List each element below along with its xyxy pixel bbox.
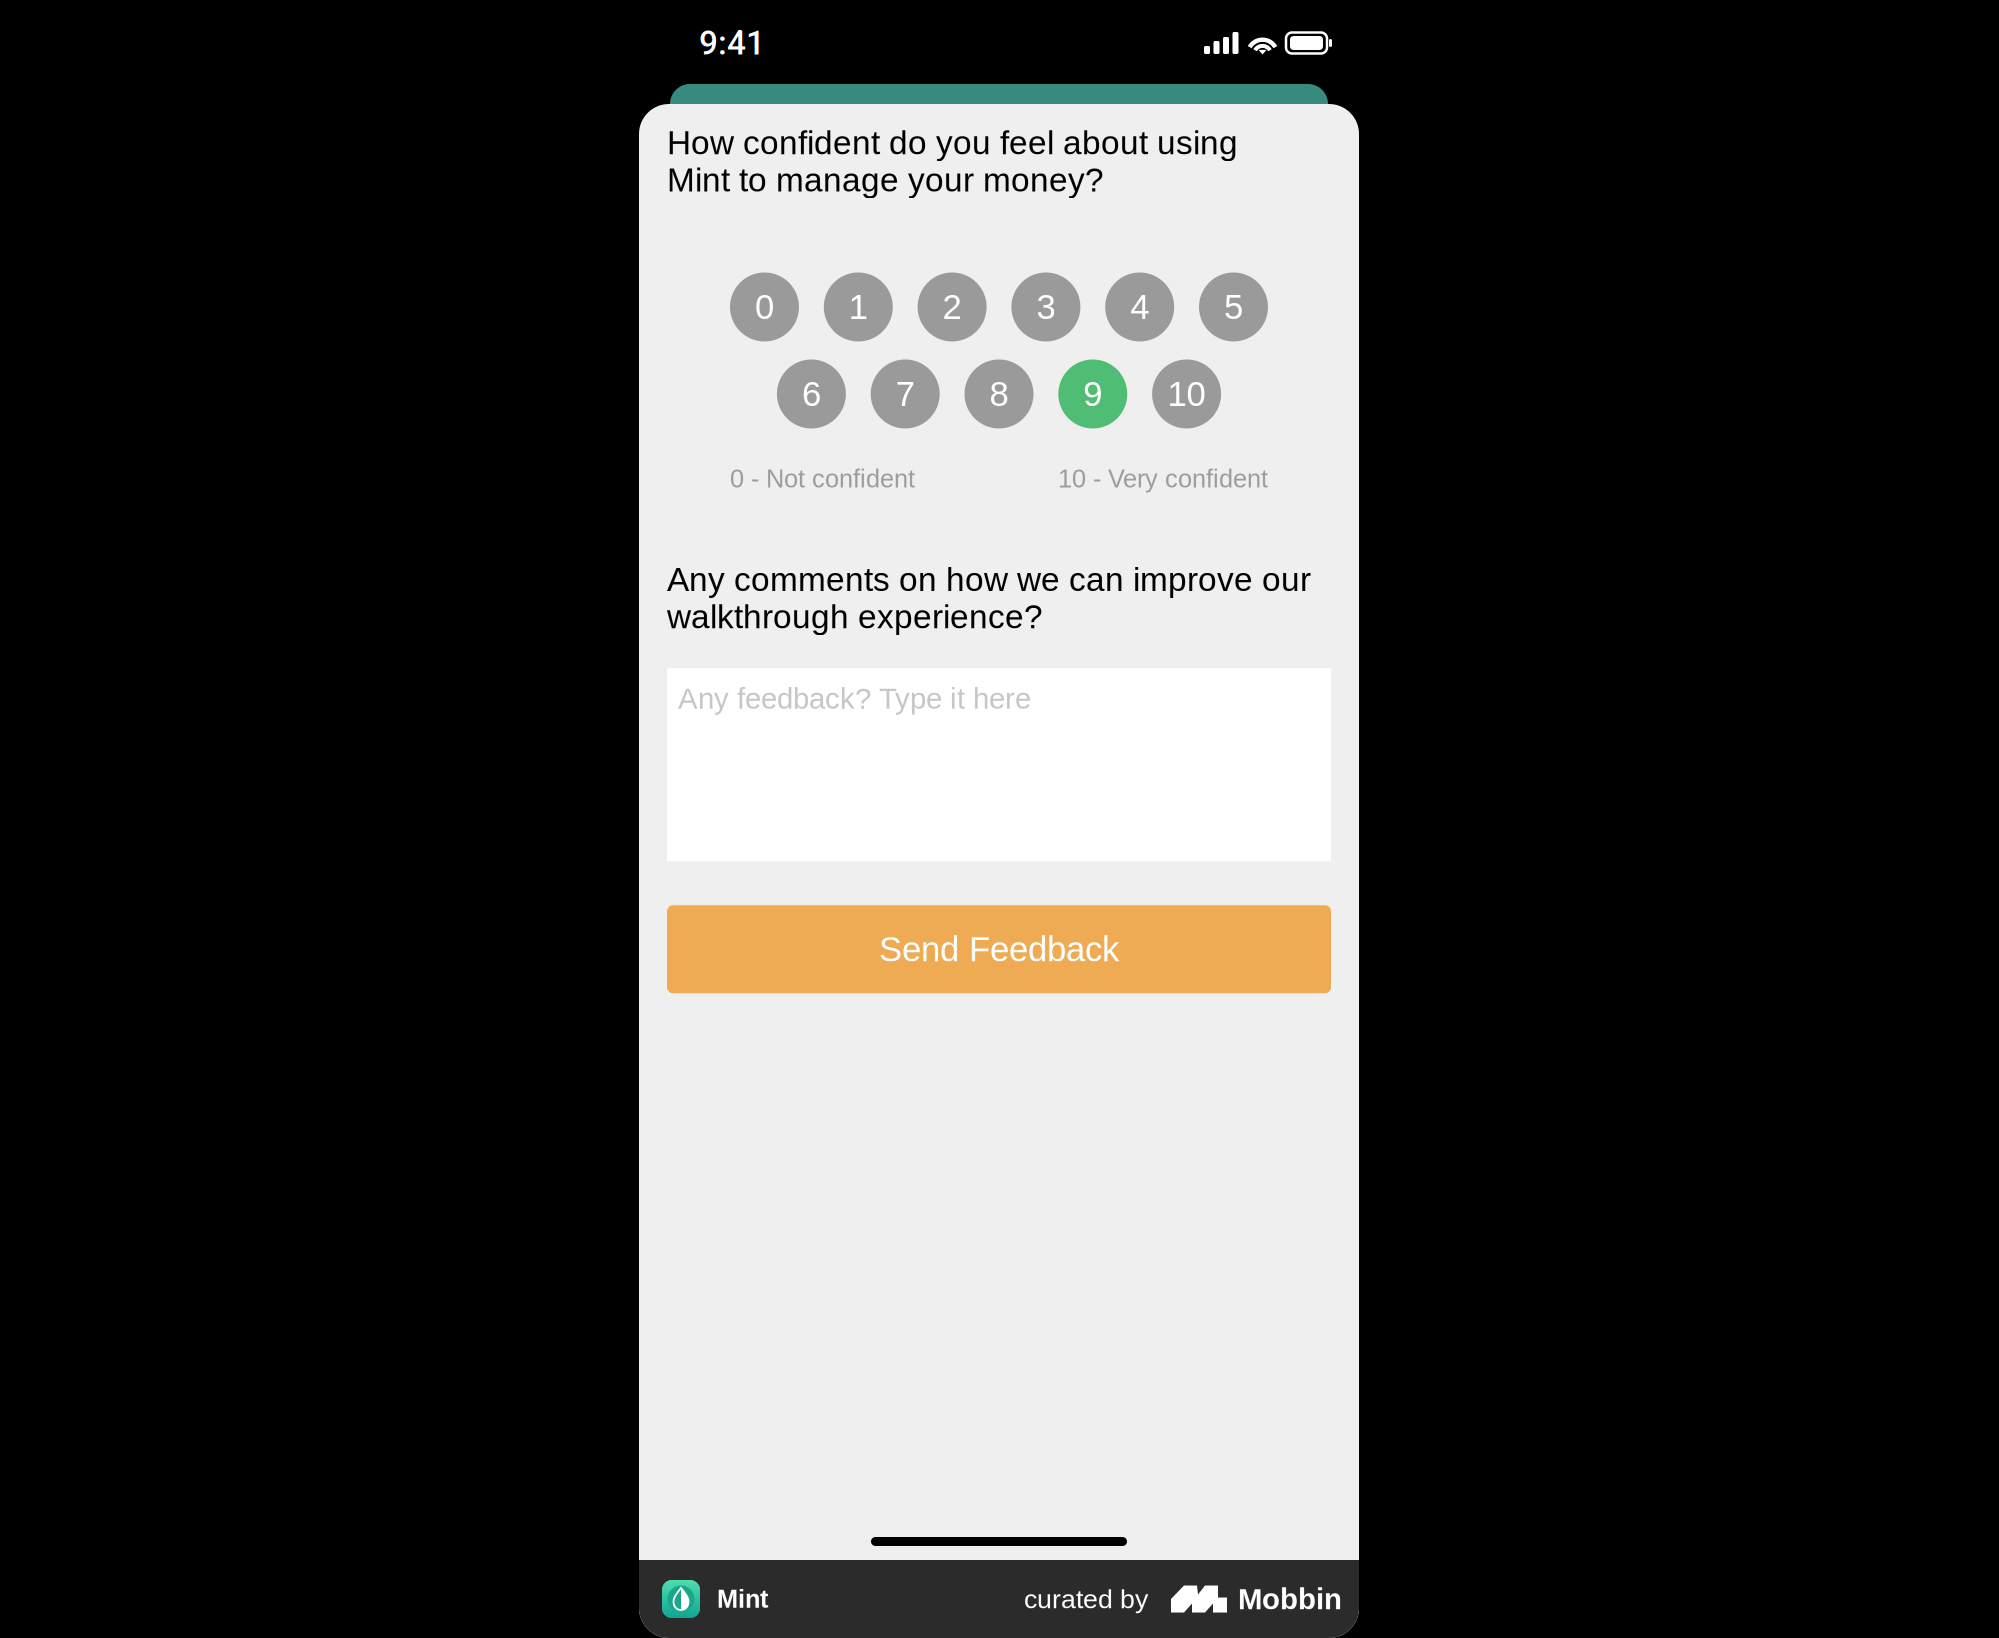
staticText: 0 - Not confident bbox=[730, 464, 915, 493]
button[interactable]: Send Feedback bbox=[667, 905, 1331, 993]
button[interactable]: curated by bbox=[1024, 1583, 1342, 1615]
staticText: curated by bbox=[1024, 1584, 1148, 1614]
staticText: Mobbin bbox=[1238, 1583, 1342, 1615]
button[interactable]: Rating 4 bbox=[1105, 272, 1174, 341]
staticText: Any feedback? Type it here bbox=[678, 682, 1031, 715]
staticText: 10 - Very confident bbox=[1058, 464, 1268, 493]
button[interactable]: Rating 1 bbox=[824, 272, 893, 341]
button[interactable]: Rating 5 bbox=[1199, 272, 1268, 341]
button[interactable]: Mint bbox=[662, 1580, 768, 1618]
button[interactable]: Rating 8 bbox=[964, 359, 1033, 428]
button[interactable]: Rating 6 bbox=[777, 359, 846, 428]
button[interactable]: Rating 3 bbox=[1011, 272, 1080, 341]
staticText: 8 bbox=[989, 375, 1008, 413]
button[interactable]: Rating 7 bbox=[871, 359, 940, 428]
staticText: Mint bbox=[717, 1585, 768, 1613]
staticText: Any comments on how we can improve our w… bbox=[667, 561, 1311, 635]
staticText: 4 bbox=[1130, 288, 1149, 326]
button[interactable]: Rating 10 bbox=[1152, 359, 1221, 428]
staticText: 10 bbox=[1168, 375, 1206, 413]
staticText: How confident do you feel about using Mi… bbox=[667, 124, 1238, 198]
button[interactable]: Rating 9 bbox=[1058, 359, 1127, 428]
staticText: 2 bbox=[943, 288, 962, 326]
staticText: 3 bbox=[1036, 288, 1055, 326]
button[interactable]: Any feedback? Type it here bbox=[667, 668, 1331, 861]
staticText: 6 bbox=[802, 375, 821, 413]
staticText: 9 bbox=[1083, 375, 1102, 413]
staticText: 7 bbox=[896, 375, 915, 413]
staticText: 5 bbox=[1224, 288, 1243, 326]
staticText: 9:41 bbox=[699, 23, 765, 63]
button[interactable]: Rating 0 bbox=[730, 272, 799, 341]
staticText: 0 bbox=[755, 288, 774, 326]
staticText: 1 bbox=[849, 288, 868, 326]
button[interactable]: Rating 2 bbox=[918, 272, 987, 341]
staticText: Send Feedback bbox=[879, 930, 1119, 969]
